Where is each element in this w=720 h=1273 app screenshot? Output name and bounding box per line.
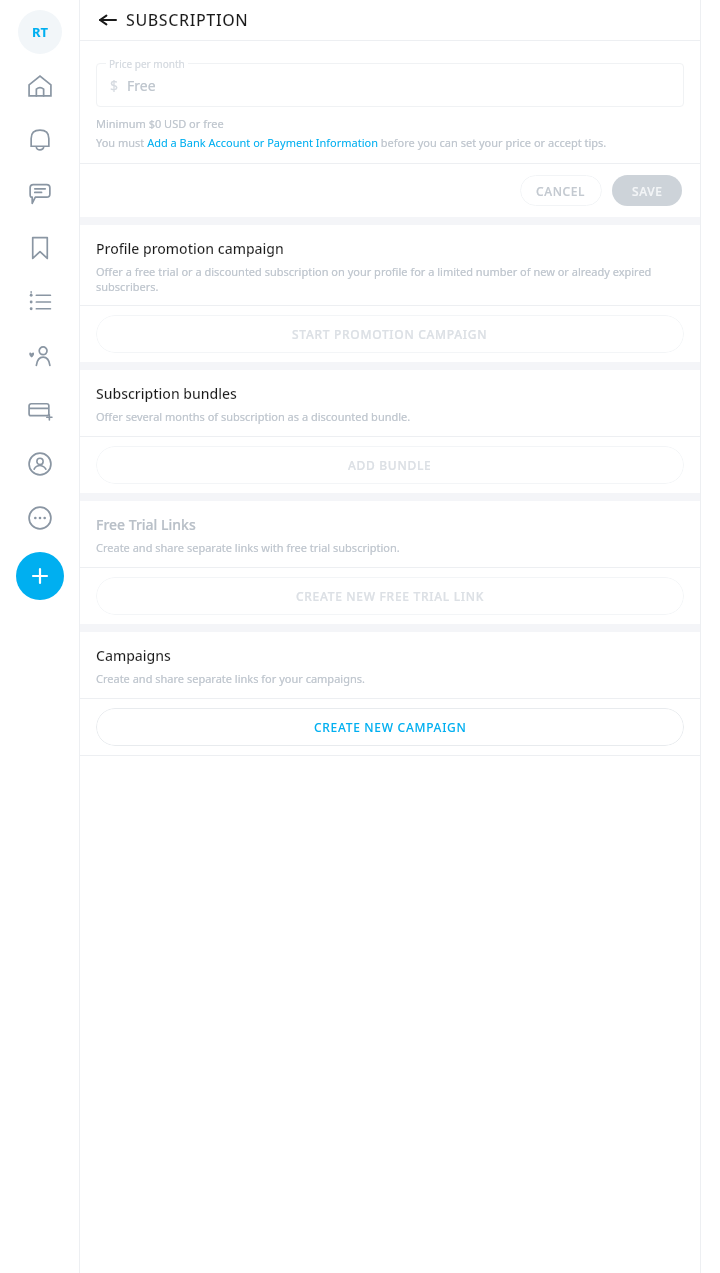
button[interactable]: More [18,496,62,540]
button[interactable]: Lists [18,280,62,324]
button[interactable]: Home [18,64,62,108]
staticText: Offer several months of subscription as … [96,409,411,424]
staticText: $ [110,76,119,95]
button[interactable]: Messages [18,172,62,216]
staticText: You must Add a Bank Account or Payment I… [96,135,607,150]
staticText: CREATE NEW FREE TRIAL LINK [296,588,484,604]
button[interactable]: START PROMOTION CAMPAIGN [96,315,684,353]
staticText: Free Trial Links [96,515,196,534]
button[interactable] [96,63,684,107]
staticText: ADD BUNDLE [348,457,432,473]
staticText: Campaigns [96,646,171,665]
button[interactable]: CREATE NEW FREE TRIAL LINK [96,577,684,615]
button[interactable]: Bookmarks [18,226,62,270]
staticText: Price per month [109,57,185,71]
button[interactable]: Subscriptions [18,334,62,378]
staticText: RT [32,23,49,41]
button[interactable]: ADD BUNDLE [96,446,684,484]
button[interactable]: Back [90,2,126,38]
button[interactable]: CANCEL [520,175,602,206]
button[interactable]: SAVE [612,175,682,206]
staticText: CANCEL [536,183,586,199]
staticText: Profile promotion campaign [96,239,284,258]
button[interactable]: Profile [18,10,62,54]
staticText: Subscription bundles [96,384,237,403]
staticText: Offer a free trial or a discounted subsc… [96,264,684,294]
staticText: START PROMOTION CAMPAIGN [292,326,488,342]
button[interactable]: CREATE NEW CAMPAIGN [96,708,684,746]
staticText: CREATE NEW CAMPAIGN [314,719,467,735]
staticText: Minimum $0 USD or free [96,116,224,131]
button[interactable]: Add card [18,388,62,432]
staticText: SUBSCRIPTION [126,9,249,31]
button[interactable]: Profile settings [18,442,62,486]
staticText: Create and share separate links with fre… [96,540,400,555]
staticText: SAVE [632,183,663,199]
staticText: Free [127,76,156,95]
staticText: Create and share separate links for your… [96,671,365,686]
button[interactable]: New post [16,552,64,600]
button[interactable]: Notifications [18,118,62,162]
